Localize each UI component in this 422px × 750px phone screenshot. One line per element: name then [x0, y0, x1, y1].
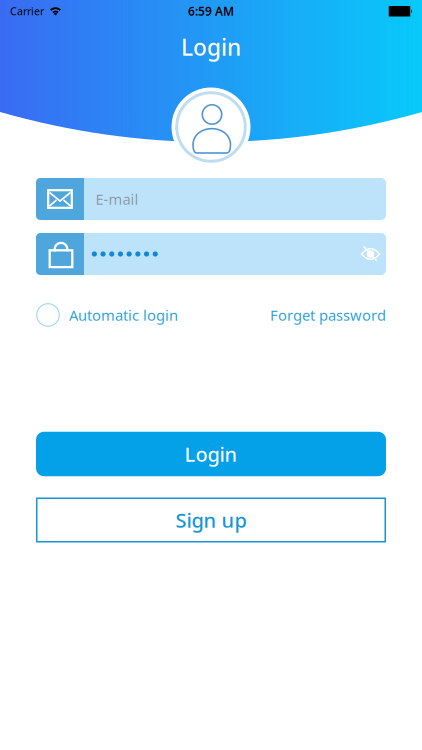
- staticText: Carrier: [10, 4, 44, 18]
- staticText: Login: [181, 32, 241, 62]
- staticText: 6:59 AM: [188, 3, 234, 19]
- button[interactable]: Login: [36, 432, 386, 476]
- staticText: Forget password: [270, 305, 386, 325]
- button[interactable]: E-mail: [36, 178, 386, 220]
- button[interactable]: Forget password: [270, 305, 386, 325]
- button[interactable]: Automatic login: [36, 303, 178, 327]
- staticText: Login: [184, 441, 237, 467]
- staticText: Automatic login: [69, 305, 178, 325]
- staticText: E-mail: [95, 189, 138, 209]
- button[interactable]: Sign up: [36, 497, 386, 542]
- staticText: Sign up: [175, 507, 246, 533]
- button[interactable]: [36, 233, 386, 275]
